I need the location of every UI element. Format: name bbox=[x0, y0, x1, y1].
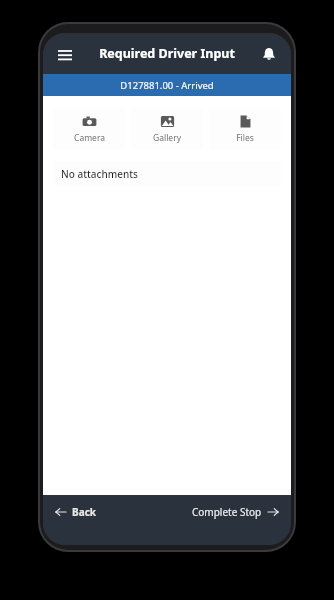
staticText: Required Driver Input bbox=[99, 45, 235, 62]
staticText: Camera bbox=[74, 132, 105, 144]
button[interactable]: No attachments bbox=[53, 161, 281, 187]
button[interactable]: D127881.00 - Arrived bbox=[43, 74, 291, 96]
button[interactable]: Open navigation menu bbox=[49, 38, 81, 70]
staticText: D127881.00 - Arrived bbox=[120, 79, 214, 92]
button[interactable]: Back bbox=[51, 501, 100, 523]
button[interactable]: Files bbox=[209, 108, 281, 150]
staticText: Back bbox=[72, 505, 96, 519]
staticText: Files bbox=[236, 132, 254, 144]
button[interactable]: Notifications bbox=[253, 38, 285, 70]
staticText: No attachments bbox=[61, 167, 138, 181]
button[interactable]: Camera bbox=[53, 108, 125, 150]
staticText: Gallery bbox=[153, 132, 181, 144]
button[interactable]: Complete Stop bbox=[188, 501, 283, 523]
button[interactable]: Gallery bbox=[131, 108, 203, 150]
staticText: Complete Stop bbox=[192, 505, 262, 519]
